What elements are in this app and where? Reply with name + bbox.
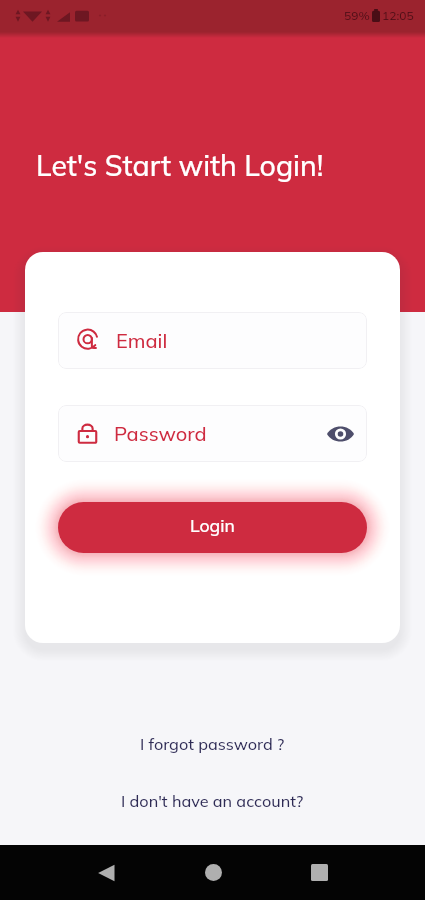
button[interactable]: Email	[58, 312, 367, 369]
button[interactable]: Login	[58, 502, 367, 553]
staticText: Email	[116, 328, 168, 353]
button[interactable]: I forgot password ?	[130, 733, 295, 755]
button[interactable]: Home	[160, 845, 266, 900]
staticText: Password	[114, 421, 207, 446]
staticText: I don't have an account?	[121, 791, 304, 811]
button[interactable]: Recent apps	[266, 845, 372, 900]
button[interactable]: Back	[53, 845, 160, 900]
button[interactable]: Show password	[325, 419, 355, 449]
staticText: Let's Start with Login!	[36, 148, 324, 184]
button[interactable]: I don't have an account?	[111, 790, 314, 812]
staticText: I forgot password ?	[140, 734, 285, 754]
staticText: 59%	[344, 8, 370, 23]
staticText: Login	[190, 514, 235, 536]
staticText: 12:05	[382, 8, 414, 23]
button[interactable]: Password	[58, 405, 367, 462]
